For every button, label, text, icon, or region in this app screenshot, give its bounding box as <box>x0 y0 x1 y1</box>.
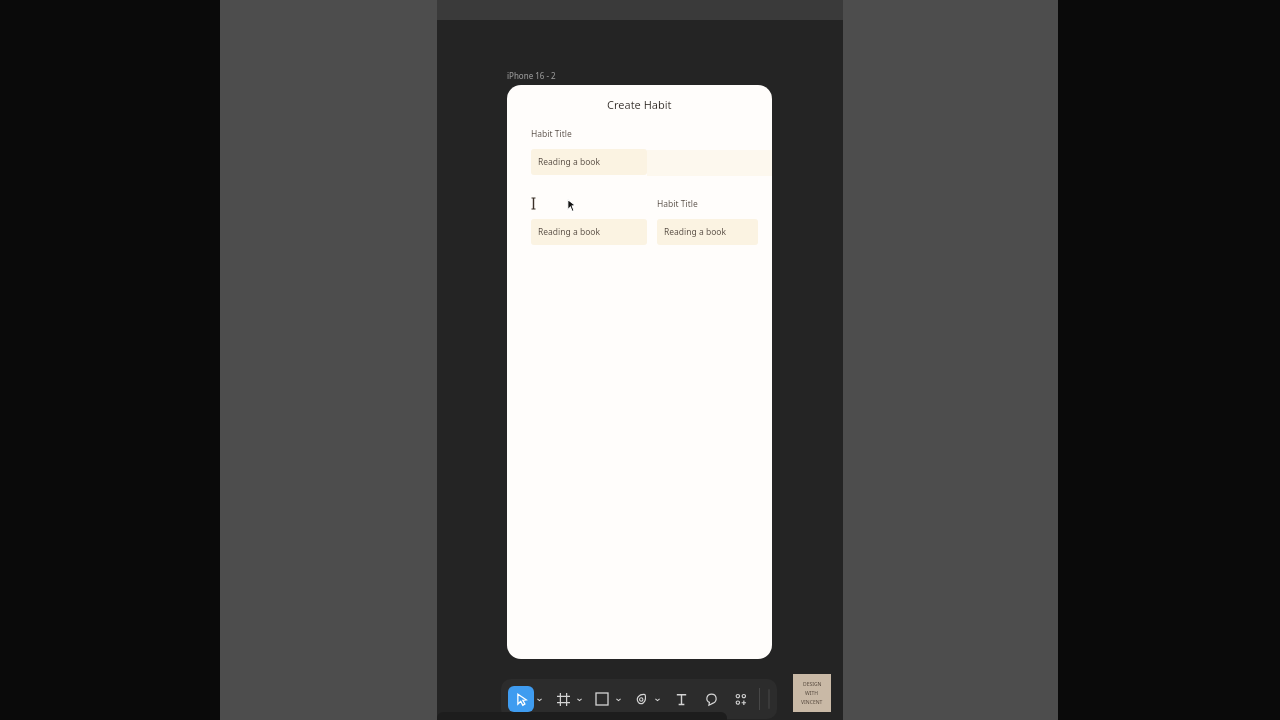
button[interactable]: Pen tool <box>630 688 652 710</box>
button[interactable]: Reading a book <box>657 219 758 245</box>
button[interactable]: Rectangle tool <box>591 688 613 710</box>
staticText: Habit Title <box>531 128 572 140</box>
button[interactable]: Reading a book <box>531 149 647 175</box>
button[interactable]: Move tool <box>508 686 534 712</box>
button[interactable]: Actions <box>730 688 752 710</box>
staticText: VINCENT <box>801 699 823 706</box>
staticText: iPhone 16 - 2 <box>507 70 556 81</box>
staticText: Create Habit <box>607 97 672 112</box>
staticText: Habit Title <box>657 198 698 210</box>
button[interactable]: Reading a book <box>531 219 647 245</box>
button[interactable]: Comment <box>700 688 722 710</box>
button[interactable]: Text tool <box>670 688 692 710</box>
staticText: WITH <box>805 690 819 697</box>
staticText: Reading a book <box>664 226 726 238</box>
button[interactable]: Frame tool <box>552 688 574 710</box>
staticText: Reading a book <box>538 156 600 168</box>
staticText: DESIGN <box>803 681 822 688</box>
staticText: Reading a book <box>538 226 600 238</box>
